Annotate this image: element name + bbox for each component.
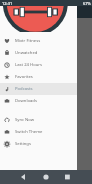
staticText: 12:31 bbox=[2, 1, 13, 6]
staticText: Switch Theme bbox=[15, 129, 43, 135]
button[interactable]: Mixtr Fitness bbox=[0, 35, 77, 47]
button[interactable]: Downloads bbox=[0, 95, 77, 107]
button[interactable]: Switch Theme bbox=[0, 126, 77, 138]
staticText: Settings bbox=[15, 141, 31, 147]
staticText: 67% bbox=[83, 1, 91, 6]
button[interactable]: Unwatched bbox=[0, 47, 77, 59]
staticText: Sync Now bbox=[15, 117, 35, 123]
button[interactable]: Podcasts bbox=[0, 83, 77, 95]
staticText: Podcasts bbox=[15, 86, 33, 92]
button[interactable]: Last 24 Hours bbox=[0, 59, 77, 71]
staticText: Unwatched bbox=[15, 50, 38, 56]
staticText: Last 24 Hours bbox=[15, 62, 42, 68]
staticText: Mixtr Fitness bbox=[15, 38, 41, 44]
button[interactable]: Settings bbox=[0, 138, 77, 150]
staticText: Favorites bbox=[15, 74, 33, 80]
staticText: Downloads bbox=[15, 98, 37, 104]
button[interactable]: Sync Now bbox=[0, 114, 77, 126]
button[interactable]: Favorites bbox=[0, 71, 77, 83]
